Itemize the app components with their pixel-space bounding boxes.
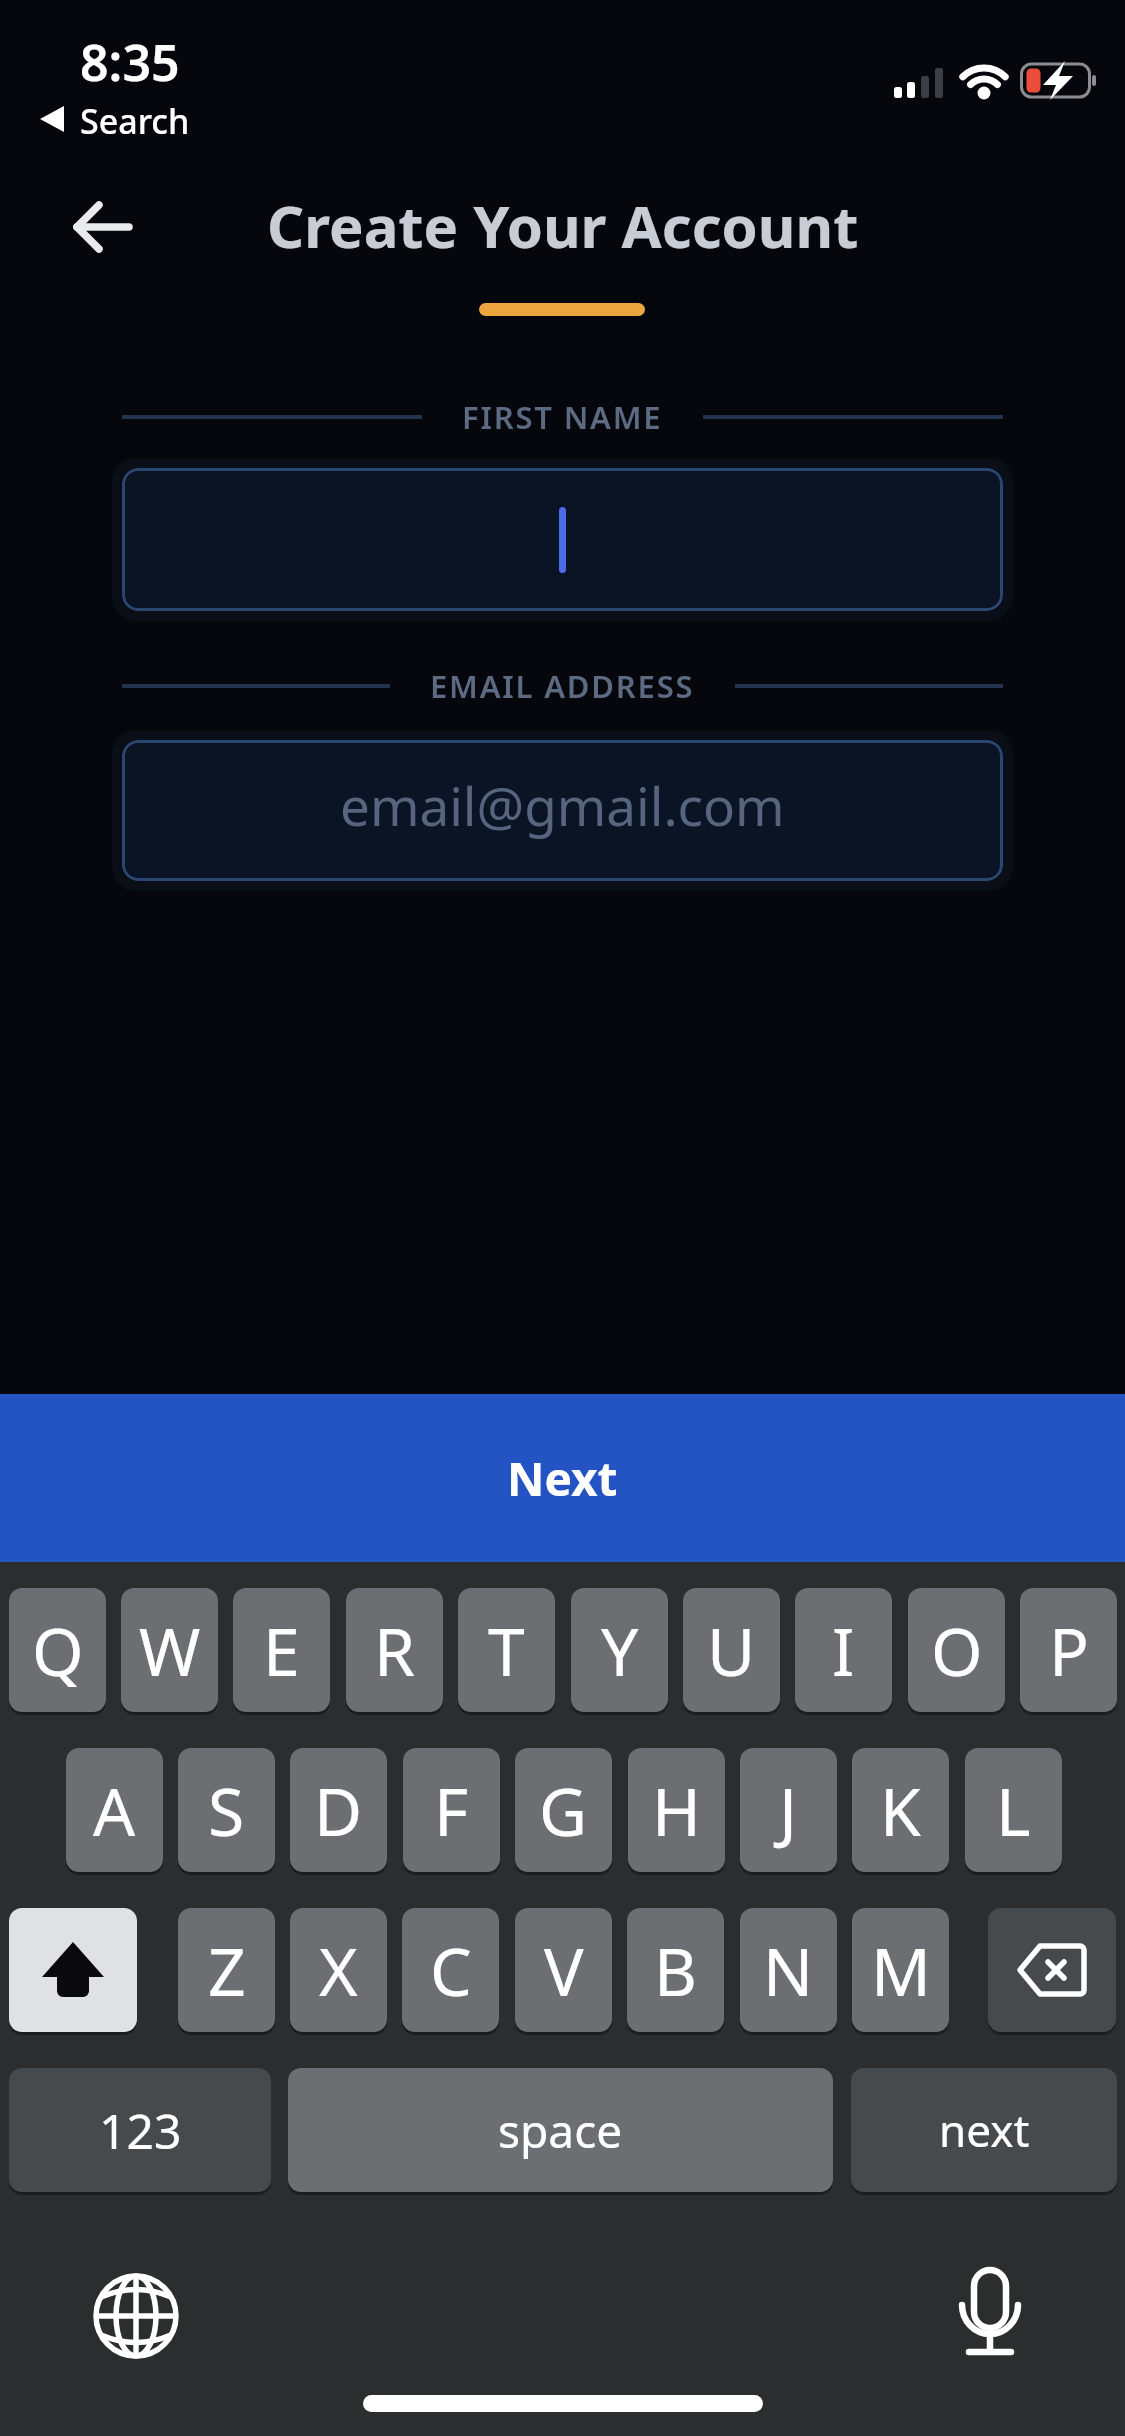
staticText: P [1049, 1605, 1089, 1695]
button[interactable]: D [290, 1748, 387, 1872]
staticText: O [931, 1605, 983, 1695]
button[interactable] [988, 1908, 1116, 2032]
staticText: E [263, 1605, 300, 1695]
staticText: EMAIL ADDRESS [430, 665, 695, 707]
button[interactable]: T [458, 1588, 555, 1712]
staticText: 8:35 [80, 28, 180, 86]
staticText: T [488, 1605, 525, 1695]
button[interactable]: space [288, 2068, 833, 2192]
button[interactable]: A [66, 1748, 163, 1872]
button[interactable]: P [1020, 1588, 1117, 1712]
button[interactable] [122, 468, 1003, 611]
staticText: K [880, 1765, 921, 1855]
button[interactable]: E [233, 1588, 330, 1712]
staticText: Search [80, 98, 190, 140]
staticText: N [763, 1925, 814, 2015]
button[interactable]: S [178, 1748, 275, 1872]
staticText: W [139, 1605, 201, 1695]
staticText: FIRST NAME [462, 396, 663, 438]
button[interactable]: N [740, 1908, 837, 2032]
button[interactable] [86, 2266, 186, 2366]
button[interactable]: K [852, 1748, 949, 1872]
staticText: next [939, 2100, 1030, 2160]
button[interactable]: X [290, 1908, 387, 2032]
button[interactable] [58, 190, 148, 264]
staticText: U [707, 1605, 756, 1695]
staticText: C [430, 1925, 472, 2015]
staticText: J [779, 1765, 798, 1855]
button[interactable]: M [852, 1908, 949, 2032]
staticText: D [314, 1765, 363, 1855]
staticText: S [208, 1765, 245, 1855]
button[interactable]: F [403, 1748, 500, 1872]
staticText: R [374, 1605, 416, 1695]
staticText: H [652, 1765, 701, 1855]
button[interactable]: email@gmail.com [122, 740, 1003, 881]
button[interactable]: 123 [9, 2068, 271, 2192]
button[interactable]: Next [0, 1394, 1125, 1562]
staticText: A [93, 1765, 136, 1855]
staticText: Q [32, 1605, 84, 1695]
staticText: 123 [99, 2098, 182, 2163]
staticText: V [544, 1925, 584, 2015]
button[interactable]: W [121, 1588, 218, 1712]
staticText: M [871, 1925, 931, 2015]
staticText: Next [507, 1447, 618, 1510]
staticText: Z [208, 1925, 246, 2015]
staticText: space [498, 2099, 623, 2162]
button[interactable]: C [402, 1908, 499, 2032]
button[interactable] [940, 2258, 1040, 2362]
button[interactable]: O [908, 1588, 1005, 1712]
staticText: Y [601, 1605, 639, 1695]
staticText: L [996, 1765, 1031, 1855]
staticText: G [539, 1765, 588, 1855]
button[interactable]: Y [571, 1588, 668, 1712]
button[interactable] [9, 1908, 137, 2032]
button[interactable]: L [965, 1748, 1062, 1872]
button[interactable]: B [627, 1908, 724, 2032]
button[interactable]: Q [9, 1588, 106, 1712]
staticText: email@gmail.com [340, 769, 785, 841]
staticText: Create Your Account [267, 186, 859, 260]
button[interactable]: V [515, 1908, 612, 2032]
button[interactable]: R [346, 1588, 443, 1712]
button[interactable]: G [515, 1748, 612, 1872]
staticText: I [832, 1605, 855, 1695]
staticText: X [319, 1925, 358, 2015]
staticText: B [654, 1925, 697, 2015]
staticText: F [434, 1765, 469, 1855]
button[interactable]: next [851, 2068, 1117, 2192]
button[interactable]: I [795, 1588, 892, 1712]
button[interactable]: Z [178, 1908, 275, 2032]
button[interactable]: H [628, 1748, 725, 1872]
button[interactable]: U [683, 1588, 780, 1712]
button[interactable]: J [740, 1748, 837, 1872]
